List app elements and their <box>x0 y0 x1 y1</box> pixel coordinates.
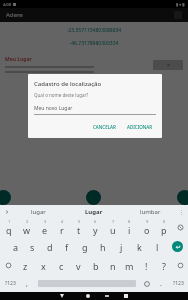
button[interactable]: Emoji <box>140 275 154 292</box>
button[interactable]: b <box>87 256 104 275</box>
button[interactable]: . <box>154 275 168 292</box>
button[interactable]: Meu novo Lugar <box>34 105 73 112</box>
button[interactable]: 1 <box>0 218 18 237</box>
staticText: i <box>128 224 131 236</box>
button[interactable]: Teclado <box>102 292 112 300</box>
staticText: v <box>76 260 81 272</box>
staticText: Lugar <box>85 208 103 216</box>
button[interactable]: Backspace <box>172 218 188 237</box>
staticText: h <box>100 241 106 253</box>
staticText: -23.5571154803088834 <box>0 27 188 34</box>
staticText: g <box>82 241 88 253</box>
staticText: u <box>110 224 116 236</box>
button[interactable]: v <box>70 256 87 275</box>
staticText: Cadastro de localização <box>34 80 102 88</box>
button[interactable]: 4 <box>53 218 70 237</box>
button[interactable]: l <box>148 237 166 256</box>
staticText: z <box>23 260 28 272</box>
button[interactable]: n <box>104 256 121 275</box>
staticText: , <box>26 279 28 289</box>
staticText: o <box>144 224 150 236</box>
staticText: 4:08 <box>3 2 11 7</box>
button[interactable]: CANCELAR <box>90 122 119 132</box>
button[interactable]: h <box>94 237 112 256</box>
staticText: lumbar <box>140 208 161 216</box>
button[interactable]: g <box>76 237 94 256</box>
button[interactable]: Apagar <box>172 256 188 275</box>
staticText: t <box>77 224 81 236</box>
button[interactable]: f <box>58 237 76 256</box>
button[interactable]: 9 <box>138 218 155 237</box>
button[interactable]: s <box>24 237 41 256</box>
staticText: 2 <box>26 219 29 224</box>
button[interactable]: m <box>121 256 138 275</box>
staticText: CANCELAR <box>93 124 116 130</box>
staticText: c <box>59 260 64 272</box>
staticText: w <box>23 224 31 236</box>
staticText: 3 <box>44 219 47 224</box>
button[interactable]: 0 <box>155 218 172 237</box>
staticText: 1 <box>8 219 11 224</box>
staticText: s <box>30 241 35 253</box>
staticText: 0 <box>163 219 166 224</box>
staticText: n <box>110 260 116 272</box>
staticText: ⋮ <box>179 209 184 215</box>
button[interactable]: lumbar <box>122 205 178 218</box>
staticText: r <box>60 224 64 236</box>
staticText: ! <box>145 260 148 272</box>
button[interactable]: lugar <box>10 205 66 218</box>
button[interactable]: Mais <box>3 208 10 215</box>
button[interactable]: ADICIONAR <box>124 122 156 132</box>
staticText: a <box>13 241 19 253</box>
button[interactable]: 2 <box>18 218 36 237</box>
button[interactable]: Enter <box>166 237 188 256</box>
staticText: x <box>41 260 46 272</box>
button[interactable]: ?123 <box>168 275 188 292</box>
button[interactable]: , <box>20 275 34 292</box>
button[interactable]: a <box>7 237 24 256</box>
button[interactable]: ?123 <box>0 275 20 292</box>
staticText: 7 <box>112 219 115 224</box>
button[interactable]: d <box>41 237 58 256</box>
button[interactable]: c <box>52 256 70 275</box>
staticText: Qual o nome deste lugar? <box>34 92 89 98</box>
button[interactable]: Mapa <box>177 190 188 205</box>
button[interactable]: 8 <box>121 218 138 237</box>
staticText: f <box>65 241 69 253</box>
button[interactable]: Localização <box>0 190 11 205</box>
button[interactable]: Recentes <box>120 292 132 300</box>
staticText: ?123 <box>5 280 16 287</box>
button[interactable]: Início <box>82 292 94 300</box>
button[interactable]: x <box>34 256 52 275</box>
button[interactable]: 5 <box>70 218 87 237</box>
staticText: lugar <box>31 208 46 216</box>
staticText: . <box>160 279 162 289</box>
button[interactable]: Menu <box>178 208 185 215</box>
staticText: 9 <box>146 219 149 224</box>
staticText: j <box>120 241 123 253</box>
button[interactable]: 3 <box>36 218 53 237</box>
staticText: ? <box>162 260 166 272</box>
button[interactable]: Lugar <box>66 205 122 218</box>
staticText: 4 <box>61 219 64 224</box>
button[interactable]: k <box>130 237 148 256</box>
staticText: y <box>93 224 98 236</box>
staticText: e <box>42 224 48 236</box>
button[interactable]: Voltar <box>56 292 68 300</box>
button[interactable]: z <box>16 256 34 275</box>
button[interactable]: ? <box>155 256 172 275</box>
staticText: p <box>161 224 167 236</box>
button[interactable]: Shift <box>0 256 16 275</box>
staticText: k <box>137 241 142 253</box>
staticText: b <box>93 260 99 272</box>
staticText: × <box>167 62 170 69</box>
button[interactable]: ! <box>138 256 155 275</box>
button[interactable]: 7 <box>104 218 121 237</box>
button[interactable]: Adicionar lugar <box>86 190 101 205</box>
button[interactable]: j <box>112 237 130 256</box>
button[interactable]: 6 <box>87 218 104 237</box>
staticText: 8 <box>128 219 131 224</box>
